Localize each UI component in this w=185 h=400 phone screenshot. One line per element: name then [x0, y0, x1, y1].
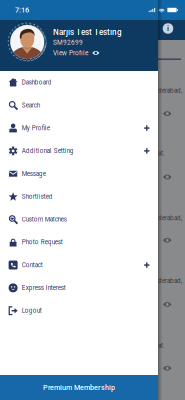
staticText: derabad, — [158, 277, 182, 284]
staticText: derabad, — [158, 214, 182, 222]
staticText: View Profile — [53, 49, 88, 57]
staticText: derabad, — [158, 87, 182, 94]
button[interactable]: Photo Request — [0, 231, 158, 254]
button[interactable]: Custom Matches — [0, 208, 158, 231]
staticText: Logout — [22, 307, 42, 314]
staticText: Express Interest — [22, 284, 66, 291]
staticText: 7:16 — [15, 6, 29, 14]
button[interactable]: Additional Setting — [0, 139, 158, 162]
staticText: at. — [158, 150, 165, 157]
button[interactable]: View Profile — [53, 48, 99, 58]
staticText: SM92699 — [53, 39, 83, 46]
staticText: i — [167, 24, 169, 33]
button[interactable]: My Profile — [0, 117, 158, 139]
staticText: Custom Matches — [22, 216, 67, 223]
button[interactable]: Dashboard — [0, 71, 158, 94]
button[interactable]: Premium Membership — [0, 375, 158, 400]
staticText: Additional Setting — [22, 147, 74, 154]
staticText: at. — [158, 342, 165, 349]
button[interactable]: Contact — [0, 254, 158, 276]
staticText: My Profile — [22, 124, 50, 132]
staticText: Premium Membership — [43, 383, 115, 392]
button[interactable]: Logout — [0, 299, 158, 322]
staticText: Shortlisted — [22, 193, 53, 200]
staticText: Search — [22, 102, 40, 109]
button[interactable]: Info — [160, 21, 175, 36]
staticText: Message — [22, 170, 46, 177]
button[interactable]: Shortlisted — [0, 185, 158, 208]
staticText: Contact — [22, 261, 43, 269]
staticText: Photo Request — [22, 239, 63, 246]
staticText: Narjis Test Testing — [53, 27, 122, 37]
button[interactable]: Search — [0, 94, 158, 117]
button[interactable]: Message — [0, 162, 158, 185]
button[interactable]: Express Interest — [0, 276, 158, 299]
staticText: Dashboard — [22, 79, 52, 86]
